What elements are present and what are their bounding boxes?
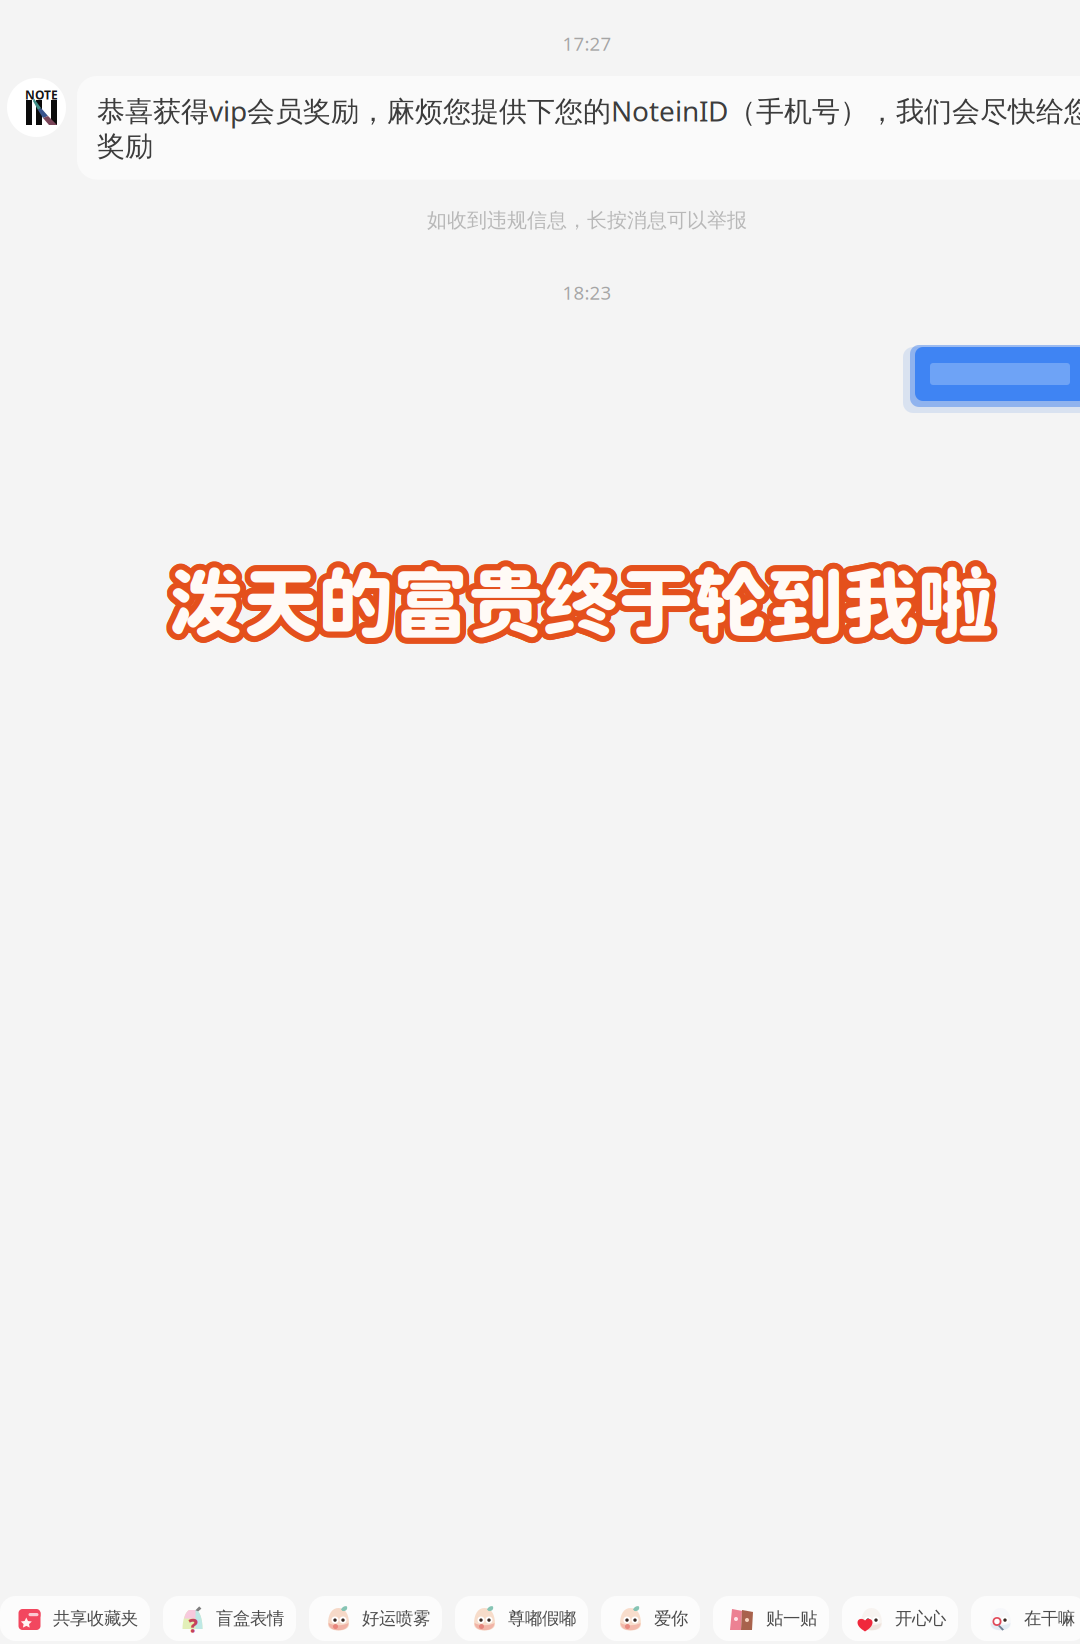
staticText: 共享收藏夹 (53, 1608, 138, 1629)
staticText: 泼天的富贵终于轮到我啦 (163, 554, 988, 643)
staticText: 18:23 (562, 280, 611, 305)
staticText: 泼天的富贵终于轮到我啦 (164, 553, 989, 642)
staticText: 泼天的富贵终于轮到我啦 (166, 564, 991, 653)
staticText: ? (188, 1613, 197, 1638)
staticText: 如收到违规信息，长按消息可以举报 (427, 208, 747, 233)
staticText: 泼天的富贵终于轮到我啦 (162, 560, 987, 649)
button[interactable]: 好运喷雾 (309, 1596, 442, 1641)
staticText: 泼天的富贵终于轮到我啦 (170, 564, 995, 653)
staticText: 泼天的富贵终于轮到我啦 (174, 556, 999, 645)
staticText: 泼天的富贵终于轮到我啦 (162, 558, 987, 647)
staticText: 爱你 (654, 1608, 688, 1629)
staticText: 好运喷雾 (362, 1608, 430, 1629)
staticText: 盲盒表情 (216, 1608, 284, 1629)
staticText: 泼天的富贵终于轮到我啦 (171, 563, 996, 652)
staticText: 泼天的富贵终于轮到我啦 (173, 561, 998, 650)
staticText: 泼天的富贵终于轮到我啦 (170, 552, 995, 641)
button[interactable]: 在干嘛 (971, 1596, 1080, 1641)
staticText: 泼天的富贵终于轮到我啦 (174, 560, 999, 649)
staticText: 泼天的富贵终于轮到我啦 (168, 564, 993, 653)
staticText: 尊嘟假嘟 (508, 1608, 576, 1629)
button[interactable]: 尊嘟假嘟 (455, 1596, 588, 1641)
button[interactable]: 共享收藏夹 (0, 1596, 150, 1641)
staticText: 恭喜获得vip会员奖励，麻烦您提供下您的NoteinID（手机号），我们会尽快给… (97, 92, 1080, 164)
staticText: NOTE (25, 87, 58, 103)
staticText: 泼天的富贵终于轮到我啦 (168, 558, 993, 647)
button[interactable]: 贴一贴 (713, 1596, 829, 1641)
staticText: 泼天的富贵终于轮到我啦 (174, 558, 999, 647)
staticText: 17:27 (562, 31, 611, 56)
staticText: 泼天的富贵终于轮到我啦 (166, 552, 991, 641)
staticText: 贴一贴 (766, 1608, 817, 1629)
staticText: 开心心 (895, 1608, 946, 1629)
staticText: 泼天的富贵终于轮到我啦 (164, 563, 989, 652)
staticText: 泼天的富贵终于轮到我啦 (173, 554, 998, 643)
staticText: 在干嘛 (1024, 1608, 1075, 1629)
staticText: 泼天的富贵终于轮到我啦 (162, 556, 987, 645)
staticText: 泼天的富贵终于轮到我啦 (163, 561, 988, 650)
button[interactable]: 爱你 (601, 1596, 700, 1641)
staticText: 泼天的富贵终于轮到我啦 (171, 553, 996, 642)
button[interactable]: ? (163, 1596, 296, 1641)
staticText: 泼天的富贵终于轮到我啦 (168, 552, 993, 641)
button[interactable]: 开心心 (842, 1596, 958, 1641)
